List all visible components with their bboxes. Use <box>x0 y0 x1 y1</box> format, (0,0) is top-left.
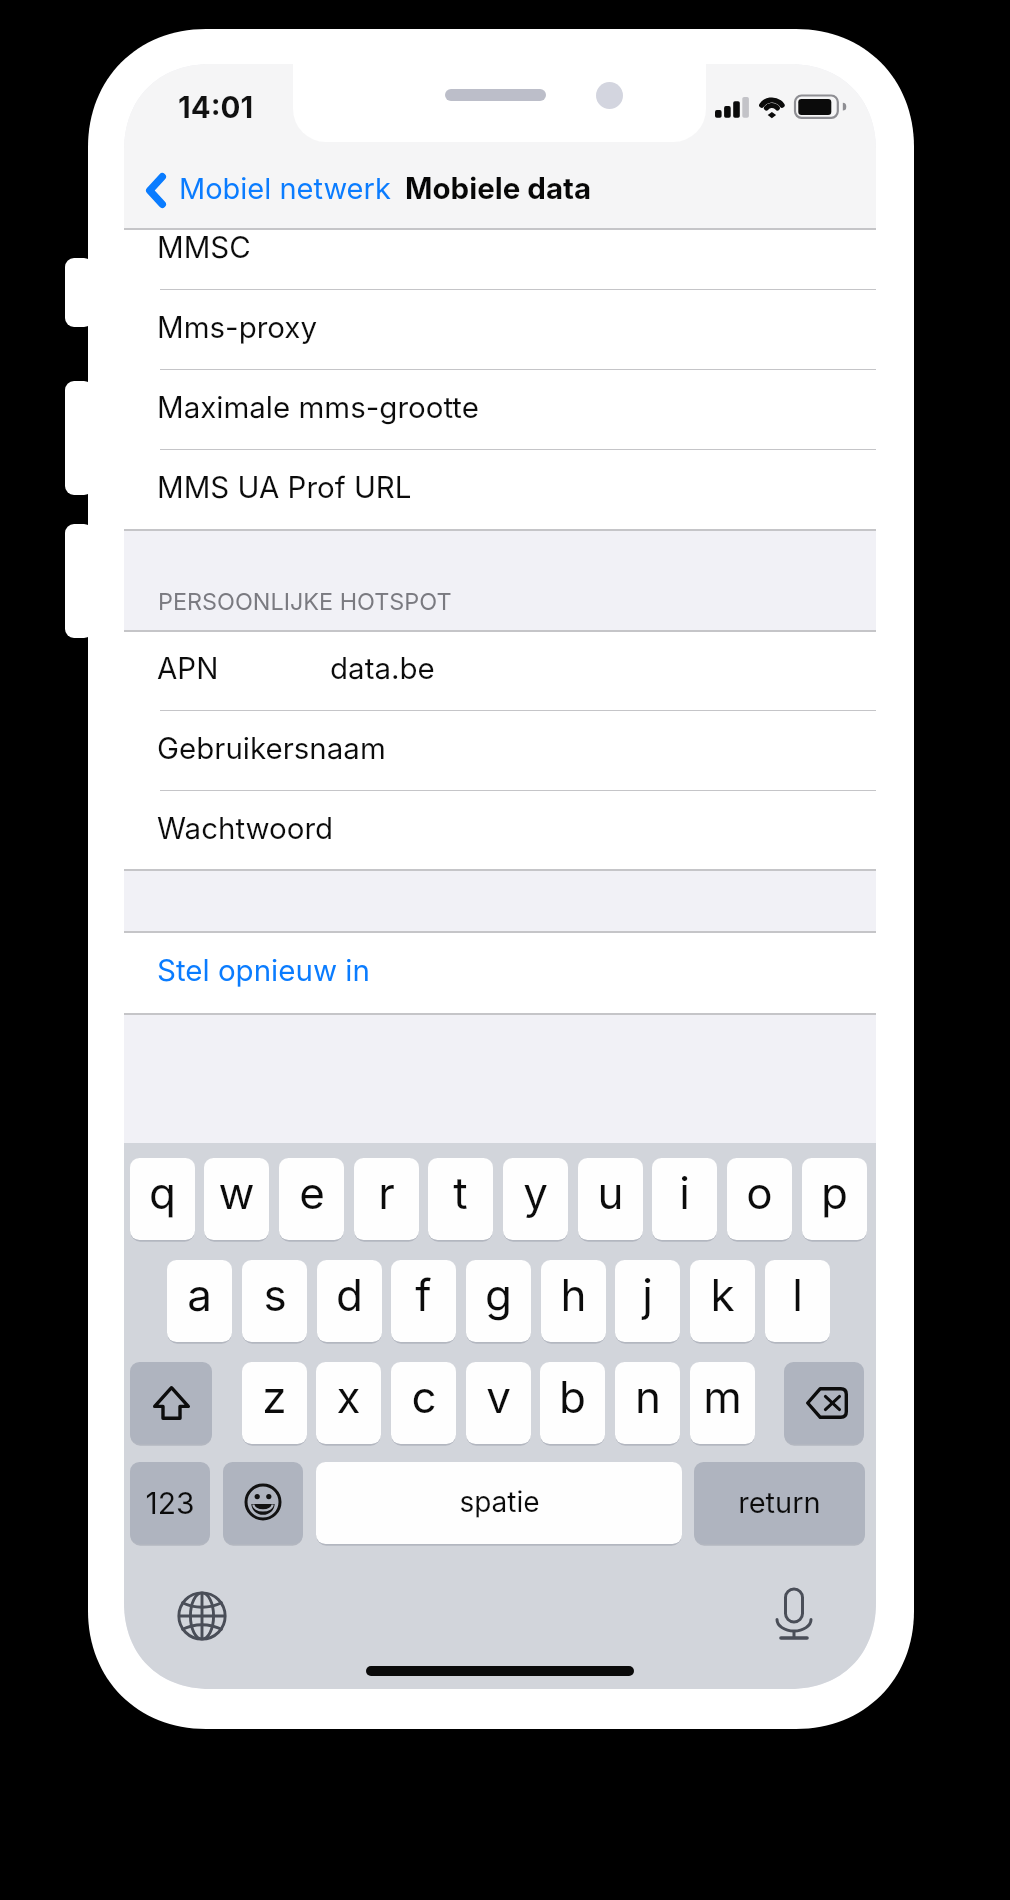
staticText: k <box>710 1268 735 1321</box>
button[interactable]: MMSC <box>124 209 876 289</box>
button[interactable]: 123 <box>130 1462 210 1544</box>
button[interactable]: spatie <box>316 1462 682 1544</box>
staticText: t <box>453 1166 468 1219</box>
staticText: Stel opnieuw in <box>157 952 370 988</box>
staticText: d <box>336 1268 363 1321</box>
button[interactable]: g <box>466 1260 531 1342</box>
staticText: i <box>679 1166 690 1219</box>
button[interactable]: return <box>694 1462 865 1544</box>
button[interactable]: h <box>541 1260 606 1342</box>
staticText: APN <box>157 650 219 686</box>
button[interactable]: Mobiel netwerk <box>140 142 425 230</box>
button[interactable]: Change keyboard <box>170 1584 234 1648</box>
staticText: h <box>560 1268 587 1321</box>
staticText: Mobiele data <box>405 170 592 206</box>
button[interactable]: b <box>540 1362 605 1444</box>
staticText: x <box>336 1370 361 1423</box>
staticText: data.be <box>330 650 435 686</box>
staticText: m <box>703 1370 742 1423</box>
button[interactable]: Dictation <box>762 1581 826 1645</box>
staticText: a <box>187 1268 212 1321</box>
button[interactable]: m <box>690 1362 755 1444</box>
button[interactable]: v <box>466 1362 531 1444</box>
button[interactable]: Gebruikersnaam <box>124 710 876 790</box>
button[interactable]: Backspace <box>784 1362 864 1444</box>
button[interactable]: x <box>316 1362 381 1444</box>
button[interactable]: a <box>167 1260 232 1342</box>
button[interactable]: w <box>204 1158 269 1240</box>
button[interactable]: z <box>242 1362 307 1444</box>
staticText: Wachtwoord <box>157 810 334 846</box>
staticText: w <box>218 1166 255 1219</box>
staticText: Maximale mms-grootte <box>157 389 479 425</box>
staticText: r <box>378 1166 395 1219</box>
staticText: return <box>738 1485 821 1520</box>
staticText: f <box>415 1268 432 1321</box>
staticText: s <box>263 1268 287 1321</box>
staticText: v <box>486 1370 511 1423</box>
staticText: j <box>642 1268 653 1321</box>
staticText: spatie <box>459 1485 540 1519</box>
staticText: l <box>792 1268 803 1321</box>
button[interactable]: y <box>503 1158 568 1240</box>
button[interactable]: t <box>428 1158 493 1240</box>
staticText: b <box>559 1370 586 1423</box>
staticText: 123 <box>145 1485 195 1521</box>
button[interactable]: j <box>615 1260 680 1342</box>
staticText: e <box>299 1166 325 1219</box>
button[interactable]: c <box>391 1362 456 1444</box>
button[interactable]: Stel opnieuw in <box>124 931 876 1013</box>
staticText: Mobiel netwerk <box>179 171 391 206</box>
button[interactable]: d <box>317 1260 382 1342</box>
button[interactable]: p <box>802 1158 867 1240</box>
button[interactable]: Wachtwoord <box>124 790 876 870</box>
staticText: z <box>262 1370 287 1423</box>
button[interactable]: o <box>727 1158 792 1240</box>
staticText: p <box>821 1166 848 1219</box>
staticText: MMSC <box>157 229 251 265</box>
staticText: MMS UA Prof URL <box>157 469 412 505</box>
staticText: PERSOONLIJKE HOTSPOT <box>158 587 452 615</box>
button[interactable]: Mms-proxy <box>124 289 876 369</box>
staticText: u <box>597 1166 624 1219</box>
staticText: n <box>635 1370 661 1423</box>
button[interactable]: Shift <box>130 1362 212 1444</box>
button[interactable]: q <box>130 1158 195 1240</box>
button[interactable]: r <box>354 1158 419 1240</box>
staticText: 14:01 <box>178 89 254 125</box>
button[interactable]: APN <box>124 630 876 710</box>
button[interactable]: MMS UA Prof URL <box>124 449 876 529</box>
staticText: o <box>746 1166 773 1219</box>
button[interactable]: i <box>652 1158 717 1240</box>
staticText: q <box>149 1166 176 1219</box>
staticText: y <box>523 1166 548 1219</box>
button[interactable]: k <box>690 1260 755 1342</box>
staticText: c <box>411 1370 437 1423</box>
button[interactable]: s <box>242 1260 307 1342</box>
button[interactable]: u <box>578 1158 643 1240</box>
button[interactable]: e <box>279 1158 344 1240</box>
staticText: g <box>485 1268 512 1321</box>
button[interactable]: Emoji <box>223 1462 303 1544</box>
button[interactable]: n <box>615 1362 680 1444</box>
staticText: Gebruikersnaam <box>157 730 386 766</box>
button[interactable]: l <box>765 1260 830 1342</box>
staticText: Mms-proxy <box>157 309 318 345</box>
button[interactable]: f <box>391 1260 456 1342</box>
button[interactable]: Maximale mms-grootte <box>124 369 876 449</box>
